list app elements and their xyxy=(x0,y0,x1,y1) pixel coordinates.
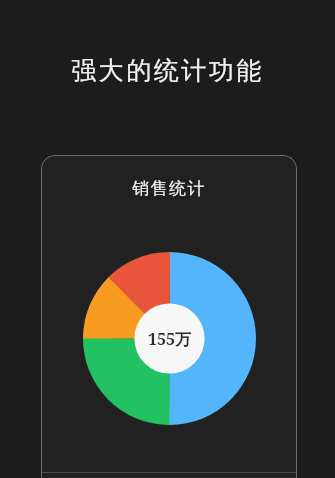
staticText: 销售统计 xyxy=(41,178,297,199)
staticText: 155万 xyxy=(148,328,192,350)
button[interactable]: 销售统计 xyxy=(41,155,297,478)
staticText: 强大的统计功能 xyxy=(0,55,335,86)
button[interactable]: 销售统计饼图 xyxy=(83,252,256,425)
